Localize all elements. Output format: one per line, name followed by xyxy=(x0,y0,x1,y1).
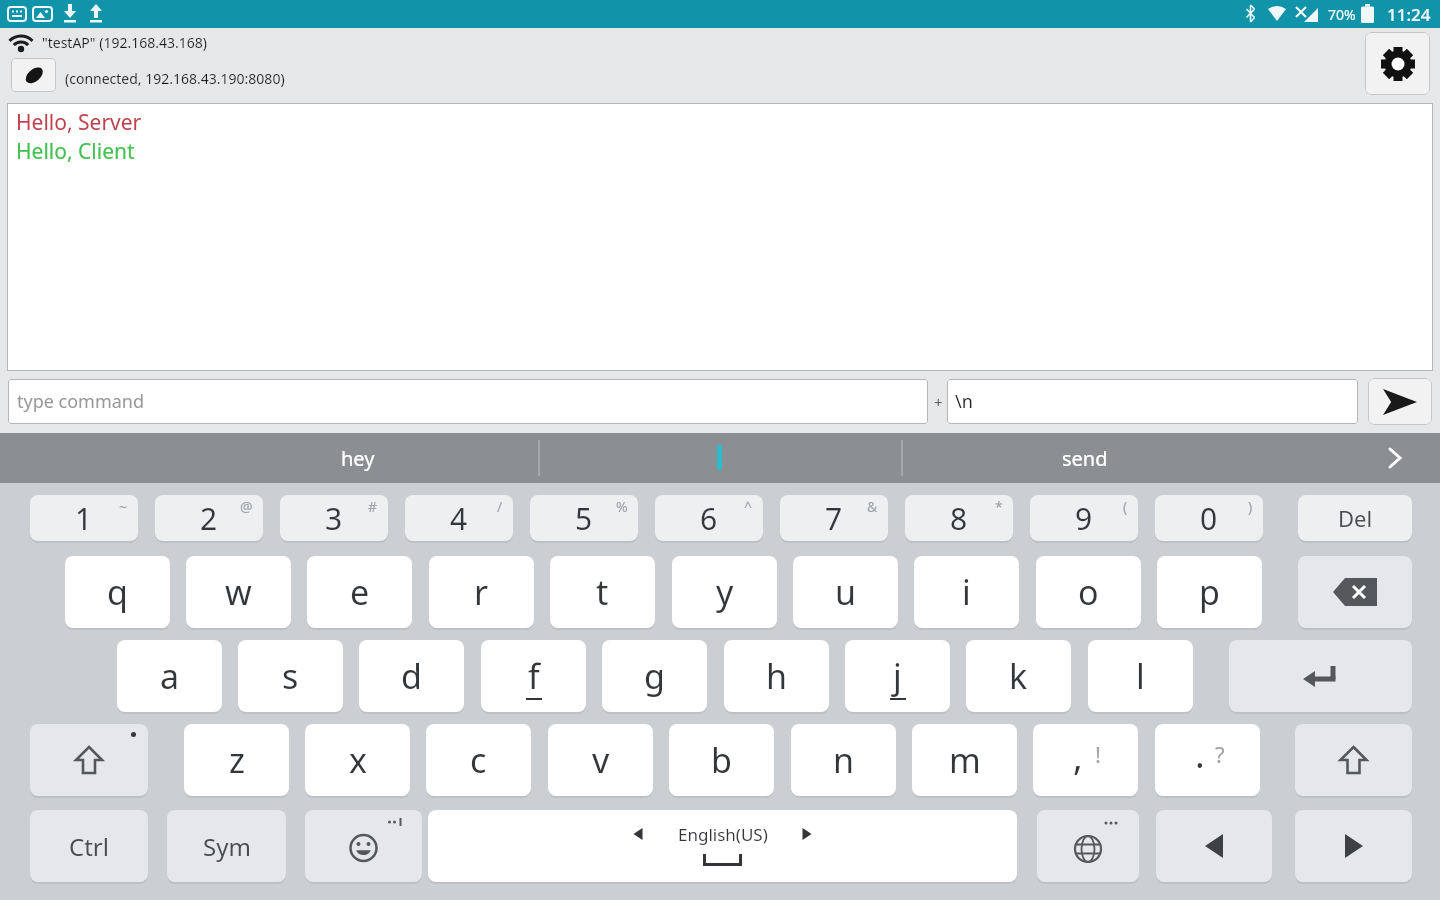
staticText: a xyxy=(160,653,180,699)
button[interactable]: a xyxy=(117,640,222,712)
staticText: h xyxy=(766,653,788,699)
staticText: j xyxy=(893,653,902,699)
button[interactable]: e xyxy=(307,556,412,628)
button[interactable]: Sym xyxy=(167,810,286,882)
button[interactable]: 1 xyxy=(30,495,138,541)
button[interactable] xyxy=(1295,810,1412,882)
button[interactable]: z xyxy=(184,724,289,796)
staticText: @ xyxy=(240,497,253,516)
button[interactable]: . xyxy=(1155,724,1260,796)
staticText: 0 xyxy=(1200,498,1218,539)
staticText: w xyxy=(225,569,252,615)
staticText: "testAP" (192.168.43.168) xyxy=(42,33,207,52)
staticText: English(US) xyxy=(678,823,768,846)
button[interactable] xyxy=(1229,640,1412,712)
button[interactable]: 9 xyxy=(1030,495,1138,541)
button[interactable]: d xyxy=(359,640,464,712)
button[interactable]: 2 xyxy=(155,495,263,541)
staticText: x xyxy=(349,737,367,783)
staticText: e xyxy=(350,569,370,615)
button[interactable]: send xyxy=(905,433,1265,483)
button[interactable]: y xyxy=(672,556,777,628)
button[interactable]: English(US) xyxy=(428,810,1017,882)
button[interactable]: 0 xyxy=(1155,495,1263,541)
button[interactable] xyxy=(1365,32,1430,95)
staticText: 6 xyxy=(700,498,718,539)
button[interactable]: f xyxy=(481,640,586,712)
staticText: p xyxy=(1199,569,1220,615)
staticText: 11:24 xyxy=(1387,3,1431,26)
staticText: ( xyxy=(1123,497,1128,516)
staticText: 70% xyxy=(1328,5,1356,24)
staticText: m xyxy=(949,737,981,783)
staticText: Sym xyxy=(203,830,251,863)
staticText: ? xyxy=(1215,739,1225,769)
staticText: k xyxy=(1009,653,1028,699)
staticText: ) xyxy=(1248,497,1253,516)
staticText: ~ xyxy=(119,497,128,516)
button[interactable]: 4 xyxy=(405,495,513,541)
button[interactable]: u xyxy=(793,556,898,628)
button[interactable]: Ctrl xyxy=(30,810,148,882)
button[interactable] xyxy=(1295,724,1412,796)
button[interactable]: r xyxy=(429,556,534,628)
button[interactable]: p xyxy=(1157,556,1262,628)
staticText: + xyxy=(934,392,943,412)
staticText: 8 xyxy=(950,498,968,539)
button[interactable]: 7 xyxy=(780,495,888,541)
button[interactable]: m xyxy=(912,724,1017,796)
button[interactable]: j xyxy=(845,640,950,712)
button[interactable]: l xyxy=(1088,640,1193,712)
button[interactable]: , xyxy=(1033,724,1138,796)
button[interactable]: i xyxy=(914,556,1019,628)
button[interactable] xyxy=(1037,810,1139,882)
staticText: t xyxy=(596,569,609,615)
staticText: Hello, Server xyxy=(16,108,142,137)
button[interactable] xyxy=(0,433,1440,483)
button[interactable]: v xyxy=(548,724,653,796)
staticText: Del xyxy=(1338,503,1373,533)
button[interactable]: n xyxy=(791,724,896,796)
button[interactable]: x xyxy=(305,724,410,796)
button[interactable]: h xyxy=(724,640,829,712)
button[interactable] xyxy=(1380,441,1410,475)
staticText: ^ xyxy=(744,497,753,516)
button[interactable]: s xyxy=(238,640,343,712)
button[interactable] xyxy=(30,724,148,796)
button[interactable]: w xyxy=(186,556,291,628)
staticText: # xyxy=(368,497,378,516)
staticText: & xyxy=(867,497,878,516)
staticText: r xyxy=(474,569,489,615)
button[interactable]: t xyxy=(550,556,655,628)
staticText: type command xyxy=(17,389,145,414)
staticText: Hello, Client xyxy=(16,137,135,166)
staticText: v xyxy=(592,737,610,783)
button[interactable]: hey xyxy=(180,433,536,483)
button[interactable] xyxy=(1156,810,1272,882)
button[interactable]: b xyxy=(669,724,774,796)
staticText: 5 xyxy=(575,498,593,539)
button[interactable] xyxy=(1298,556,1412,628)
button[interactable]: g xyxy=(602,640,707,712)
button[interactable]: 5 xyxy=(530,495,638,541)
button[interactable]: 3 xyxy=(280,495,388,541)
button[interactable] xyxy=(1368,378,1432,425)
staticText: l xyxy=(1136,653,1145,699)
button[interactable]: Del xyxy=(1298,495,1412,541)
button[interactable] xyxy=(11,58,56,92)
staticText: i xyxy=(962,569,971,615)
button[interactable]: 8 xyxy=(905,495,1013,541)
button[interactable] xyxy=(305,810,422,882)
button[interactable]: c xyxy=(426,724,531,796)
staticText: q xyxy=(107,569,128,615)
button[interactable]: 6 xyxy=(655,495,763,541)
button[interactable]: q xyxy=(65,556,170,628)
staticText: 1 xyxy=(75,498,93,539)
staticText: (connected, 192.168.43.190:8080) xyxy=(65,69,285,88)
staticText: / xyxy=(497,497,503,516)
staticText: g xyxy=(644,653,665,699)
staticText: 7 xyxy=(825,498,843,539)
button[interactable]: o xyxy=(1036,556,1141,628)
staticText: s xyxy=(282,653,299,699)
button[interactable]: k xyxy=(966,640,1071,712)
